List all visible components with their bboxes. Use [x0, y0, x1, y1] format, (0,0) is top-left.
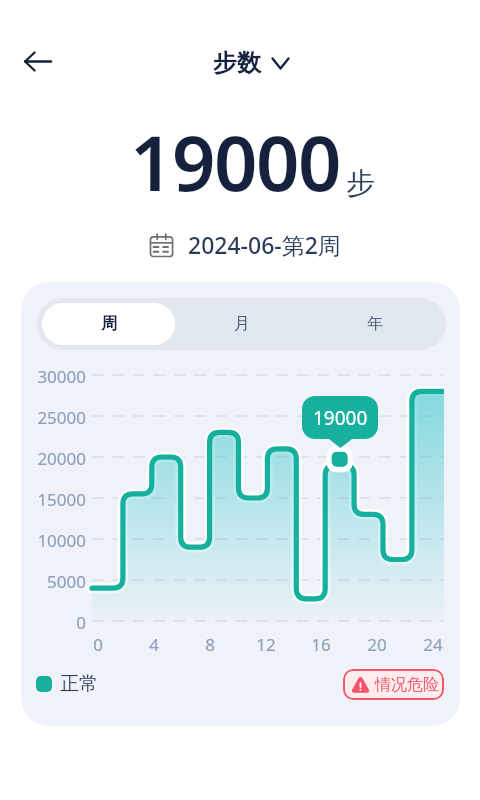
staticText: 12	[246, 633, 286, 656]
button[interactable]: 年	[308, 303, 441, 345]
staticText: 15000	[26, 488, 86, 511]
button[interactable]: 月	[175, 303, 308, 345]
staticText: 0	[26, 611, 86, 634]
staticText: 25000	[26, 406, 86, 429]
staticText: 20000	[26, 447, 86, 470]
staticText: 正常	[60, 672, 98, 696]
staticText: 10000	[26, 529, 86, 552]
staticText: 19000	[130, 110, 340, 214]
staticText: 8	[190, 633, 230, 656]
button[interactable]: Back	[11, 35, 63, 87]
staticText: 步数	[213, 48, 261, 78]
staticText: 5000	[26, 570, 86, 593]
staticText: 20	[357, 633, 397, 656]
button[interactable]: 正常	[32, 671, 102, 697]
staticText: 周	[101, 314, 117, 334]
staticText: 情况危险	[375, 675, 439, 695]
staticText: 4	[134, 633, 174, 656]
staticText: 19000	[313, 405, 368, 431]
staticText: 2024-06-第2周	[188, 229, 341, 260]
button[interactable]: 周	[42, 303, 175, 345]
button[interactable]: 情况危险	[343, 669, 444, 700]
staticText: 月	[234, 314, 250, 334]
staticText: 年	[367, 314, 383, 334]
staticText: 0	[78, 633, 118, 656]
button[interactable]: 步数	[207, 43, 295, 83]
staticText: 24	[413, 633, 453, 656]
staticText: 步	[346, 165, 375, 202]
staticText: 16	[301, 633, 341, 656]
staticText: 30000	[26, 365, 86, 388]
